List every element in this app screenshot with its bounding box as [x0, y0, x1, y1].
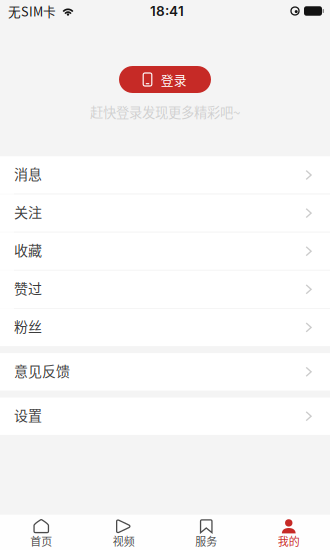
button[interactable]: 设置	[0, 397, 330, 435]
staticText: 登录	[161, 70, 187, 89]
staticText: 无SIM卡	[8, 2, 56, 20]
button[interactable]: 关注	[0, 194, 330, 232]
staticText: 服务	[195, 533, 217, 549]
button[interactable]: 收藏	[0, 232, 330, 270]
button[interactable]: 服务	[165, 514, 247, 550]
staticText: 收藏	[14, 240, 42, 260]
button[interactable]: 赞过	[0, 271, 330, 308]
button[interactable]: 意见反馈	[0, 353, 330, 390]
staticText: 粉丝	[14, 316, 42, 336]
staticText: 首页	[30, 533, 52, 549]
button[interactable]: 首页	[0, 514, 82, 550]
staticText: 消息	[14, 163, 42, 184]
staticText: 关注	[14, 201, 42, 222]
staticText: 赶快登录发现更多精彩吧~	[90, 102, 240, 121]
staticText: 意见反馈	[14, 360, 70, 380]
staticText: 视频	[113, 533, 135, 549]
button[interactable]: 粉丝	[0, 309, 330, 346]
staticText: 我的	[278, 533, 300, 549]
staticText: 18:41	[150, 3, 184, 19]
button[interactable]: 消息	[0, 156, 330, 194]
staticText: 设置	[14, 405, 42, 425]
button[interactable]: 登录	[119, 66, 211, 93]
button[interactable]: 我的	[247, 514, 330, 550]
staticText: 赞过	[14, 278, 42, 298]
button[interactable]: 视频	[82, 514, 165, 550]
